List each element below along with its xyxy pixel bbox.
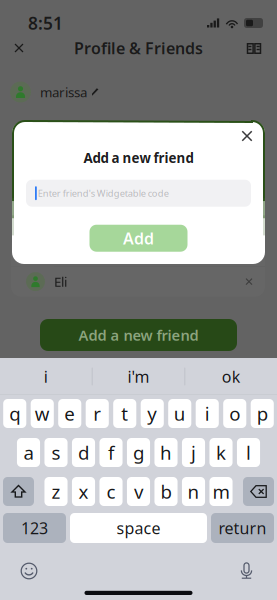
staticText: q [9, 401, 20, 426]
staticText: Add a new friend [83, 149, 193, 167]
staticText: m [212, 479, 229, 504]
button[interactable]: b [154, 477, 177, 506]
staticText: c [106, 479, 115, 504]
staticText: t [121, 401, 128, 426]
button[interactable]: o [223, 399, 246, 428]
button[interactable]: w [31, 399, 54, 428]
button[interactable]: Eli [11, 267, 265, 297]
staticText: ok [222, 366, 241, 387]
staticText: Eli [54, 273, 67, 290]
button[interactable]: l [237, 438, 260, 467]
staticText: marissa [40, 83, 87, 101]
button[interactable]: q [3, 399, 26, 428]
staticText: h [160, 440, 172, 465]
button[interactable]: c [99, 477, 123, 506]
button[interactable]: Dictation [229, 562, 277, 580]
button[interactable]: Hana [11, 236, 265, 266]
button[interactable]: Emoji keyboard [0, 562, 48, 580]
button[interactable]: s [44, 438, 68, 467]
button[interactable]: Shift [3, 477, 34, 506]
staticText: 123 [21, 517, 48, 539]
staticText: w [35, 401, 50, 426]
button[interactable]: x [72, 477, 95, 506]
button[interactable]: i [196, 399, 219, 428]
staticText: 8:51 [28, 11, 63, 34]
button[interactable]: space [70, 513, 207, 543]
button[interactable]: n [182, 477, 205, 506]
button[interactable]: a [17, 438, 40, 467]
staticText: l [246, 440, 251, 465]
button[interactable]: Add [89, 225, 187, 252]
button[interactable]: h [154, 438, 178, 467]
button[interactable]: g [127, 438, 150, 467]
staticText: Enter friend's Widgetable code [38, 187, 169, 199]
staticText: i [44, 366, 48, 387]
staticText: space [116, 517, 160, 539]
staticText: a [23, 440, 33, 465]
button[interactable]: y [141, 399, 164, 428]
button[interactable]: v [127, 477, 150, 506]
staticText: o [229, 401, 240, 426]
button[interactable]: Friends directory [239, 34, 269, 62]
staticText: i [205, 401, 210, 426]
staticText: b [160, 479, 171, 504]
staticText: f [108, 440, 114, 465]
button[interactable]: r [86, 399, 109, 428]
staticText: y [147, 401, 157, 426]
staticText: z [51, 479, 60, 504]
button[interactable]: i [0, 358, 92, 394]
button[interactable]: z [44, 477, 68, 506]
staticText: v [134, 479, 143, 504]
button[interactable]: Close [4, 34, 34, 62]
staticText: i'm [127, 366, 149, 387]
button[interactable]: u [168, 399, 191, 428]
button[interactable]: Add a new friend [40, 319, 237, 351]
button[interactable]: ok [185, 358, 277, 394]
button[interactable]: t [113, 399, 136, 428]
staticText: g [133, 440, 144, 465]
staticText: j [191, 440, 196, 465]
button[interactable]: m [209, 477, 232, 506]
button[interactable]: Backspace [243, 477, 274, 506]
staticText: x [78, 479, 88, 504]
button[interactable]: k [209, 438, 233, 467]
button[interactable]: d [72, 438, 95, 467]
staticText: Profile & Friends [74, 37, 203, 59]
staticText: e [64, 401, 75, 426]
button[interactable]: p [251, 399, 274, 428]
staticText: s [51, 440, 60, 465]
button[interactable]: return [211, 513, 274, 543]
button[interactable]: j [182, 438, 205, 467]
staticText: return [218, 517, 266, 539]
staticText: d [78, 440, 89, 465]
button[interactable]: f [99, 438, 123, 467]
staticText: Add [123, 228, 154, 249]
button[interactable]: 123 [3, 513, 66, 543]
staticText: u [174, 401, 186, 426]
button[interactable]: i'm [93, 358, 184, 394]
staticText: p [257, 401, 268, 426]
staticText: n [187, 479, 199, 504]
staticText: k [216, 440, 226, 465]
button[interactable]: e [58, 399, 81, 428]
button[interactable]: Dismiss [234, 125, 260, 147]
staticText: r [93, 401, 101, 426]
staticText: Add a new friend [78, 325, 198, 345]
